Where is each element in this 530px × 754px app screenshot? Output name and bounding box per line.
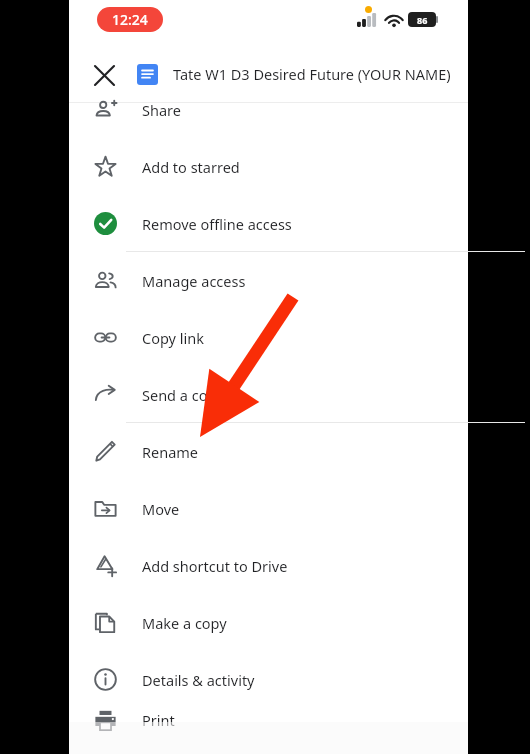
staticText: 86 (417, 14, 428, 26)
staticText: Rename (142, 442, 199, 462)
staticText: Remove offline access (142, 214, 292, 234)
button[interactable]: Manage access (69, 252, 468, 309)
button[interactable]: Add shortcut to Drive (69, 537, 468, 594)
staticText: 12:24 (112, 10, 148, 29)
button[interactable]: Remove offline access (69, 195, 468, 252)
button[interactable]: Make a copy (69, 594, 468, 651)
button[interactable]: Add to starred (69, 138, 468, 195)
staticText: Share (142, 100, 181, 120)
button[interactable]: Rename (69, 423, 468, 480)
button[interactable]: Close (83, 54, 125, 96)
button[interactable]: Move (69, 480, 468, 537)
staticText: Print (142, 710, 175, 730)
staticText: Details & activity (142, 670, 255, 690)
staticText: Manage access (142, 271, 246, 291)
staticText: Add to starred (142, 157, 240, 177)
staticText: Send a copy (142, 385, 224, 405)
button[interactable]: Send a copy (69, 366, 468, 423)
staticText: Add shortcut to Drive (142, 556, 288, 576)
button[interactable]: Details & activity (69, 651, 468, 708)
button[interactable]: Copy link (69, 309, 468, 366)
button[interactable]: Print (69, 708, 468, 732)
staticText: Tate W1 D3 Desired Future (YOUR NAME) (173, 64, 463, 84)
staticText: Copy link (142, 328, 204, 348)
staticText: Make a copy (142, 613, 227, 633)
button[interactable]: Share (69, 81, 468, 138)
staticText: Move (142, 499, 180, 519)
